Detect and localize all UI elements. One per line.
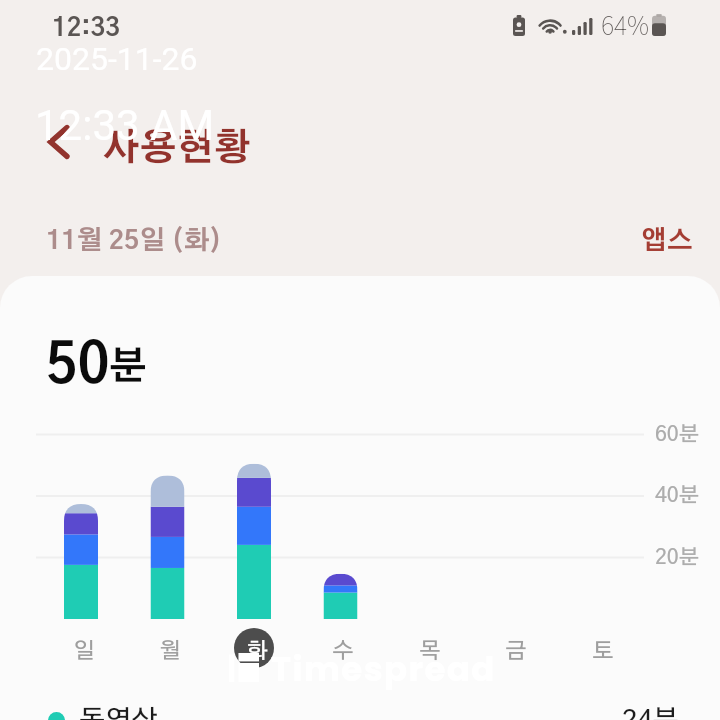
button[interactable]: 화: [234, 628, 274, 668]
staticText: 수: [332, 640, 354, 662]
button[interactable]: 동영상: [48, 707, 158, 720]
staticText: 64%: [601, 6, 650, 42]
staticText: 11월 25일 (화): [46, 228, 222, 254]
staticText: 동영상: [79, 707, 158, 720]
staticText: 토: [592, 640, 614, 662]
staticText: 12:33: [52, 16, 120, 41]
staticText: 일: [73, 640, 95, 662]
staticText: 앱스: [641, 228, 693, 254]
staticText: 24분: [622, 707, 679, 720]
staticText: 목: [419, 640, 441, 662]
staticText: 월: [159, 640, 181, 662]
staticText: 50: [46, 340, 110, 394]
staticText: 분: [109, 349, 147, 387]
staticText: 금: [505, 640, 527, 662]
button[interactable]: 목: [407, 628, 447, 668]
staticText: 사용현황: [103, 130, 251, 167]
button[interactable]: 일: [61, 628, 101, 668]
button[interactable]: 11월 25일 (화): [34, 212, 234, 270]
staticText: 2025-11-26: [36, 40, 198, 78]
staticText: 12:33 AM: [35, 101, 215, 150]
button[interactable]: 월: [147, 628, 187, 668]
button[interactable]: 수: [320, 628, 360, 668]
button[interactable]: 앱스: [629, 212, 705, 270]
staticText: 20분: [655, 547, 700, 568]
staticText: 화: [246, 640, 268, 662]
button[interactable]: 금: [493, 628, 533, 668]
button[interactable]: Back: [30, 114, 86, 170]
staticText: 40분: [655, 485, 700, 506]
button[interactable]: 토: [580, 628, 620, 668]
staticText: Timespread: [271, 645, 496, 693]
staticText: 60분: [655, 424, 700, 445]
